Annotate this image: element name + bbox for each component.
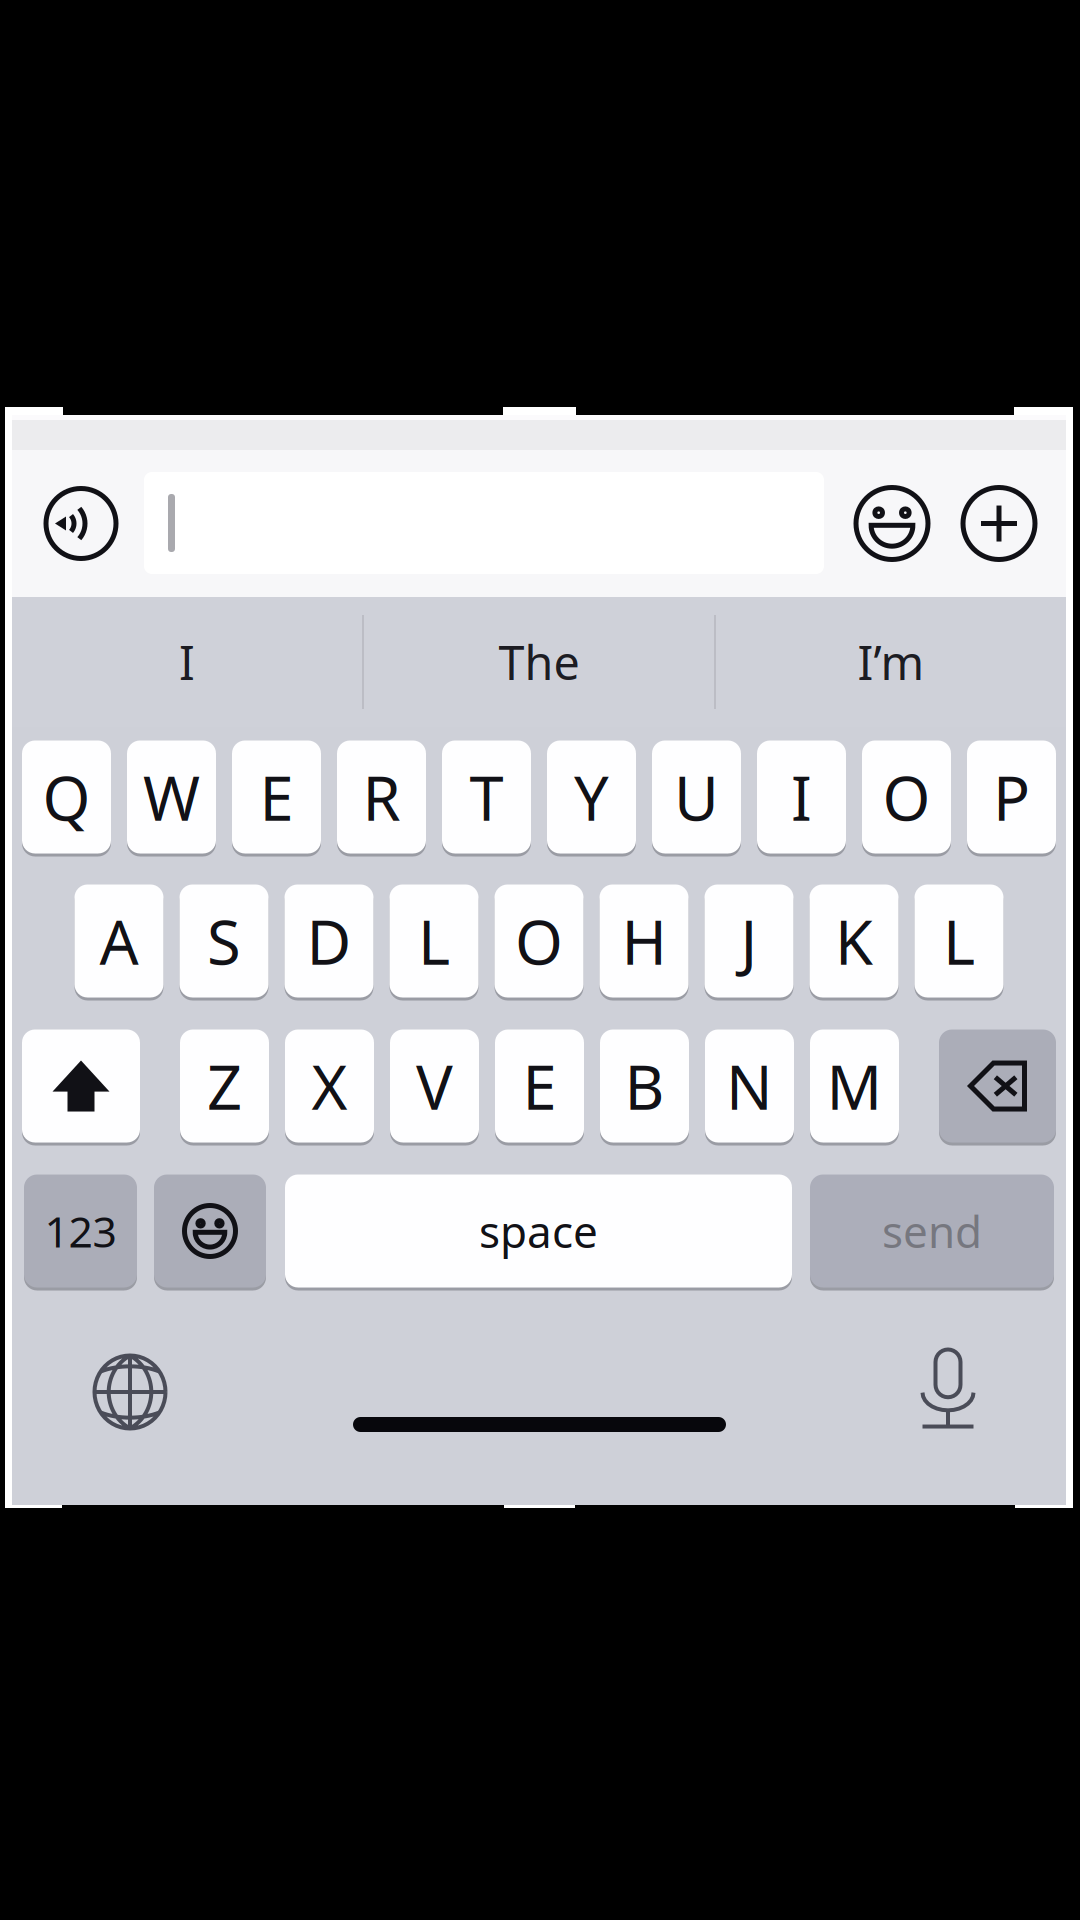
button[interactable]: Next keyboard: [55, 1317, 205, 1467]
staticText: R: [362, 756, 400, 838]
button[interactable]: S: [179, 884, 268, 1000]
staticText: Z: [207, 1045, 242, 1127]
button[interactable]: U: [652, 740, 741, 856]
button[interactable]: X: [285, 1029, 374, 1145]
staticText: W: [143, 756, 200, 838]
button[interactable]: I: [757, 740, 846, 856]
staticText: M: [826, 1045, 882, 1127]
button[interactable]: Audio message: [19, 450, 143, 597]
button[interactable]: space: [285, 1174, 792, 1290]
button[interactable]: B: [600, 1029, 689, 1145]
staticText: The: [498, 631, 579, 693]
button[interactable]: J: [704, 884, 793, 1000]
button[interactable]: Delete: [939, 1029, 1056, 1145]
button[interactable]: Y: [547, 740, 636, 856]
staticText: D: [306, 900, 351, 982]
staticText: Y: [574, 756, 609, 838]
staticText: Q: [42, 756, 90, 838]
button[interactable]: T: [442, 740, 531, 856]
staticText: L: [418, 900, 450, 982]
button[interactable]: K: [809, 884, 898, 1000]
button[interactable]: Q: [22, 740, 111, 856]
button[interactable]: H: [599, 884, 688, 1000]
staticText: J: [740, 900, 757, 982]
button[interactable]: send: [810, 1174, 1054, 1290]
button[interactable]: L: [914, 884, 1003, 1000]
staticText: P: [993, 756, 1030, 838]
button[interactable]: Shift: [22, 1029, 140, 1145]
button[interactable]: O: [494, 884, 583, 1000]
staticText: O: [882, 756, 930, 838]
staticText: I’m: [857, 631, 924, 693]
staticText: E: [259, 756, 293, 838]
button[interactable]: E: [495, 1029, 584, 1145]
staticText: S: [207, 900, 241, 982]
button[interactable]: D: [284, 884, 373, 1000]
staticText: V: [416, 1045, 453, 1127]
button[interactable]: Z: [180, 1029, 269, 1145]
button[interactable]: M: [810, 1029, 899, 1145]
staticText: T: [469, 756, 503, 838]
button[interactable]: Add attachment: [947, 450, 1051, 597]
button[interactable]: Emoji keyboard: [154, 1174, 266, 1290]
button[interactable]: I’m: [716, 597, 1066, 727]
button[interactable]: E: [232, 740, 321, 856]
staticText: A: [99, 900, 138, 982]
button[interactable]: The: [364, 597, 714, 727]
button[interactable]: P: [967, 740, 1056, 856]
button[interactable]: V: [390, 1029, 479, 1145]
staticText: send: [882, 1202, 982, 1260]
button[interactable]: O: [862, 740, 951, 856]
staticText: B: [624, 1045, 664, 1127]
staticText: N: [726, 1045, 773, 1127]
staticText: space: [479, 1202, 598, 1260]
button[interactable]: I: [12, 597, 362, 727]
staticText: X: [311, 1045, 347, 1127]
staticText: L: [943, 900, 975, 982]
button[interactable]: N: [705, 1029, 794, 1145]
staticText: U: [674, 756, 719, 838]
staticText: O: [515, 900, 563, 982]
staticText: I: [179, 631, 195, 693]
button[interactable]: Dictation: [873, 1313, 1023, 1463]
staticText: I: [791, 756, 812, 838]
button[interactable]: A: [74, 884, 163, 1000]
staticText: H: [621, 900, 666, 982]
staticText: K: [835, 900, 873, 982]
button[interactable]: W: [127, 740, 216, 856]
staticText: 123: [44, 1203, 116, 1259]
staticText: E: [522, 1045, 556, 1127]
button[interactable]: Emoji: [840, 450, 944, 597]
button[interactable]: R: [337, 740, 426, 856]
button[interactable]: 123: [24, 1174, 137, 1290]
button[interactable]: L: [389, 884, 478, 1000]
